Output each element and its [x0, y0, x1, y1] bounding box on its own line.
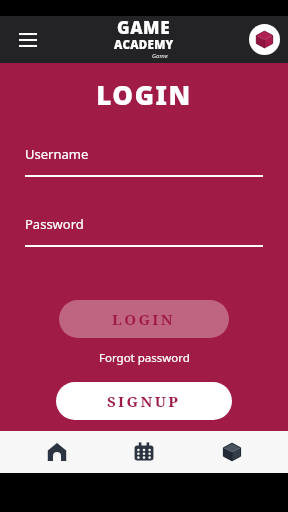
staticText: SIGNUP: [107, 391, 181, 411]
button[interactable]: LOGIN: [59, 300, 229, 338]
button[interactable]: SIGNUP: [56, 382, 232, 420]
button[interactable]: Home: [26, 431, 88, 473]
button[interactable]: Username: [25, 145, 263, 177]
staticText: Forgot password: [99, 350, 190, 366]
staticText: Password: [25, 215, 84, 233]
staticText: LOGIN: [112, 309, 176, 329]
button[interactable]: Products: [201, 431, 263, 473]
button[interactable]: Menu: [12, 24, 44, 56]
button[interactable]: Profile: [249, 24, 280, 55]
button[interactable]: Password: [25, 215, 263, 247]
button[interactable]: Calendar: [113, 431, 175, 473]
staticText: Username: [25, 145, 89, 163]
staticText: Game: [152, 52, 168, 60]
staticText: LOGIN: [0, 77, 288, 112]
staticText: ACADEMY: [114, 37, 174, 53]
button[interactable]: Forgot password: [99, 350, 190, 366]
staticText: GAME: [117, 16, 171, 39]
